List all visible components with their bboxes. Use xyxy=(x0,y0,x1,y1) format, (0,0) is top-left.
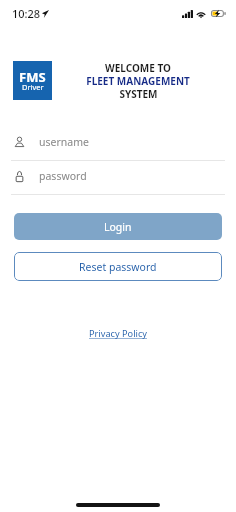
staticText: username xyxy=(39,135,89,149)
button[interactable]: Login xyxy=(14,213,222,240)
staticText: Reset password xyxy=(79,260,157,274)
staticText: password xyxy=(39,169,87,183)
staticText: Login xyxy=(104,220,132,234)
button[interactable]: Reset password xyxy=(14,252,222,281)
staticText: FLEET MANAGEMENT xyxy=(86,74,190,87)
staticText: FMS xyxy=(19,68,46,86)
button[interactable]: username xyxy=(11,130,225,161)
button[interactable]: Privacy Policy xyxy=(89,327,147,340)
staticText: SYSTEM xyxy=(119,87,158,100)
button[interactable]: password xyxy=(11,164,225,195)
staticText: 10:28 xyxy=(12,6,41,21)
staticText: WELCOME TO xyxy=(105,61,171,74)
staticText: Driver xyxy=(22,82,44,92)
